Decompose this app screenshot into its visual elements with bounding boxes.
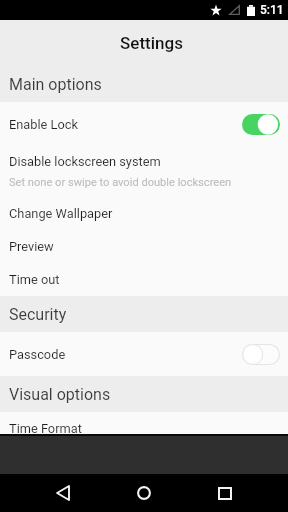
button[interactable]: Passcode: [0, 332, 288, 376]
staticText: 5:11: [260, 3, 284, 17]
button[interactable]: Recents: [204, 474, 246, 512]
staticText: Main options: [9, 75, 102, 94]
staticText: Disable lockscreen system: [9, 154, 161, 169]
staticText: Time Format: [9, 421, 82, 434]
staticText: Enable Lock: [9, 117, 78, 132]
staticText: Passcode: [9, 347, 66, 362]
staticText: Visual options: [9, 385, 111, 404]
staticText: Preview: [9, 239, 54, 254]
button[interactable]: Disable lockscreen system: [0, 146, 288, 197]
staticText: Settings: [120, 33, 183, 53]
button[interactable]: Preview: [0, 230, 288, 262]
staticText: Time out: [9, 272, 60, 287]
staticText: Security: [9, 305, 67, 324]
button[interactable]: Time out: [0, 262, 288, 296]
button[interactable]: Enable Lock: [0, 102, 288, 146]
staticText: Set none or swipe to avoid double locksc…: [9, 176, 232, 189]
button[interactable]: Time Format: [0, 412, 288, 434]
button[interactable]: Change Wallpaper: [0, 197, 288, 230]
staticText: Change Wallpaper: [9, 206, 113, 221]
button[interactable]: Home: [123, 474, 165, 512]
button[interactable]: Back: [42, 474, 84, 512]
